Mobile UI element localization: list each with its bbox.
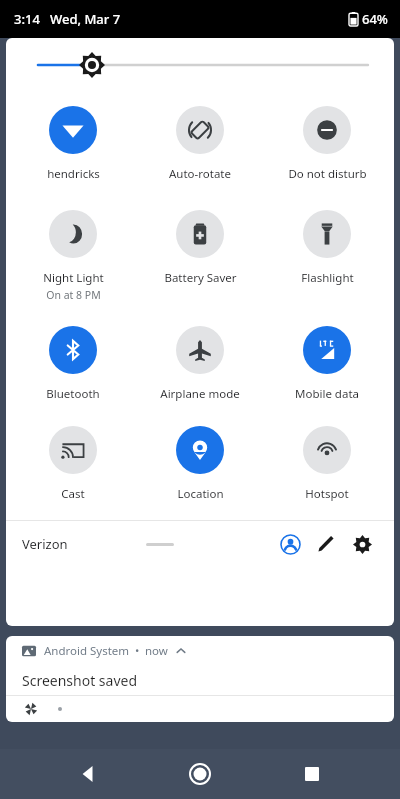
button[interactable]: Recents xyxy=(289,751,335,797)
staticText: Screenshot saved xyxy=(22,671,138,690)
button[interactable]: Settings xyxy=(344,526,380,562)
staticText: hendricks xyxy=(47,166,100,182)
button[interactable]: Mobile data xyxy=(267,326,387,402)
staticText: Bluetooth xyxy=(46,386,100,402)
staticText: Hotspot xyxy=(305,486,349,502)
staticText: 3:14 xyxy=(14,10,40,28)
button[interactable]: Auto-rotate xyxy=(140,106,260,182)
staticText: Airplane mode xyxy=(160,386,240,402)
button[interactable]: Back xyxy=(66,751,112,797)
button[interactable]: Edit xyxy=(308,526,344,562)
staticText: Auto-rotate xyxy=(169,166,231,182)
staticText: On at 8 PM xyxy=(46,288,101,302)
staticText: Location xyxy=(177,486,224,502)
button[interactable]: Hotspot xyxy=(267,426,387,502)
staticText: Wed, Mar 7 xyxy=(50,10,121,28)
button[interactable]: Brightness xyxy=(6,38,394,92)
button[interactable]: Home xyxy=(177,751,223,797)
button[interactable]: Android System xyxy=(6,636,394,722)
button[interactable]: Flashlight xyxy=(267,210,387,286)
button[interactable]: hendricks xyxy=(13,106,133,182)
button[interactable]: Share xyxy=(20,698,42,720)
button[interactable]: Battery Saver xyxy=(140,210,260,286)
staticText: Mobile data xyxy=(295,386,359,402)
staticText: Do not disturb xyxy=(288,166,367,182)
staticText: • xyxy=(135,643,140,659)
staticText: Night Light xyxy=(43,270,104,286)
staticText: 64% xyxy=(362,10,388,28)
button[interactable]: Cast xyxy=(13,426,133,502)
button[interactable]: Do not disturb xyxy=(267,106,387,182)
staticText: Flashlight xyxy=(301,270,354,286)
staticText: Cast xyxy=(61,486,85,502)
button[interactable]: User xyxy=(272,526,308,562)
button[interactable]: Bluetooth xyxy=(13,326,133,402)
button[interactable]: Location xyxy=(140,426,260,502)
staticText: Android System xyxy=(44,643,130,659)
button[interactable]: Airplane mode xyxy=(140,326,260,402)
staticText: Battery Saver xyxy=(164,270,237,286)
staticText: now xyxy=(145,643,168,659)
button[interactable]: Night Light xyxy=(13,210,133,302)
button[interactable]: Verizon xyxy=(22,535,68,553)
